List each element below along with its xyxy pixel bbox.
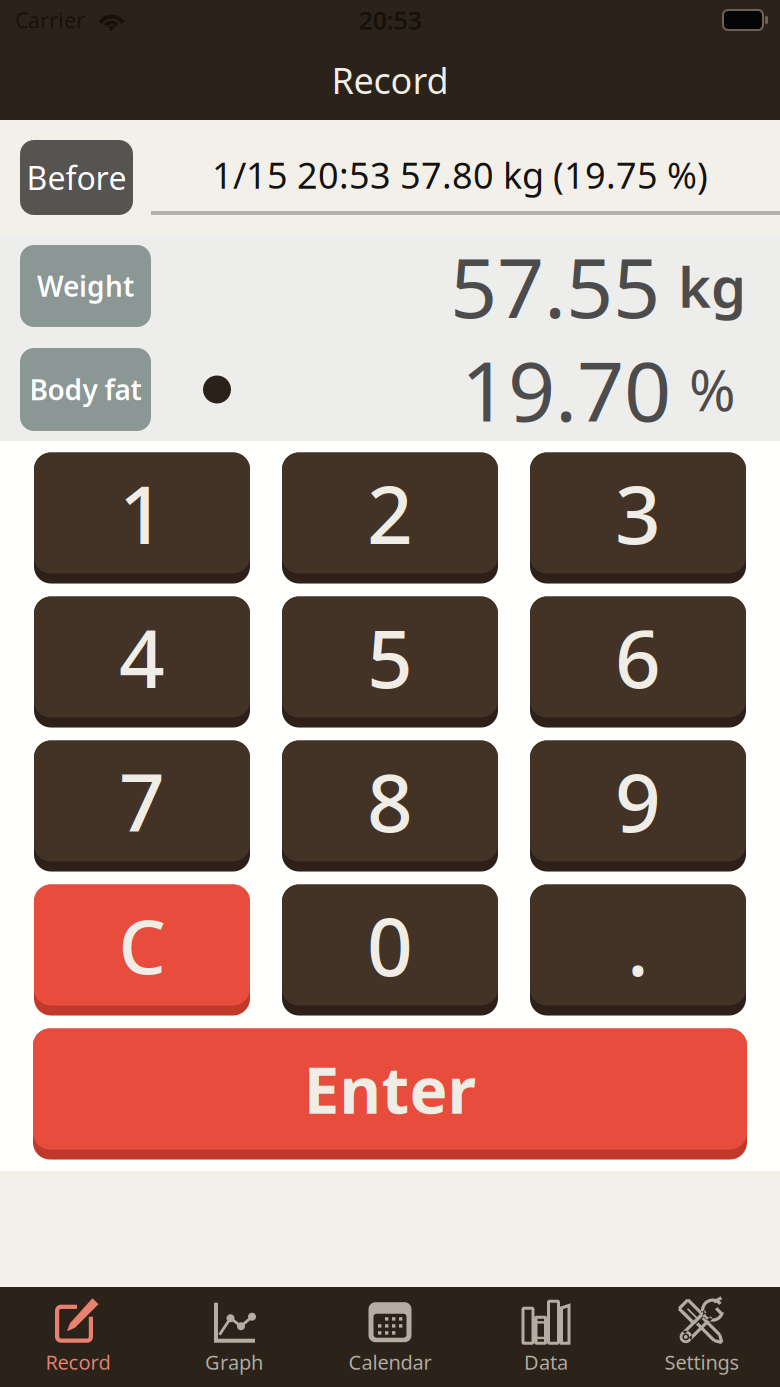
staticText: Settings (664, 1349, 739, 1375)
staticText: Calendar (348, 1349, 431, 1375)
staticText: Carrier (15, 6, 85, 34)
button[interactable]: 4 (34, 596, 250, 727)
button[interactable]: 8 (282, 740, 498, 871)
staticText: 19.70 (461, 335, 671, 444)
button[interactable]: 5 (282, 596, 498, 727)
button[interactable]: Settings (624, 1287, 780, 1387)
button[interactable]: Graph (156, 1287, 312, 1387)
staticText: Record (45, 1349, 110, 1375)
staticText: 20:53 (358, 3, 421, 37)
staticText: 1 (119, 460, 165, 566)
staticText: . (627, 892, 649, 998)
staticText: Graph (205, 1349, 263, 1375)
staticText: 1/15 20:53 57.80 kg (19.75 %) (212, 151, 708, 199)
button[interactable]: Before (20, 140, 133, 215)
button[interactable]: 6 (530, 596, 746, 727)
button[interactable]: Data (468, 1287, 624, 1387)
staticText: kg (678, 249, 746, 323)
button[interactable]: Calendar (312, 1287, 468, 1387)
staticText: Body fat (29, 371, 141, 408)
button[interactable]: Enter (33, 1028, 747, 1159)
button[interactable]: Record (0, 1287, 156, 1387)
staticText: Enter (303, 1046, 476, 1131)
staticText: 3 (615, 460, 661, 566)
button[interactable]: 3 (530, 452, 746, 583)
button[interactable]: 9 (530, 740, 746, 871)
staticText: Before (26, 156, 126, 199)
button[interactable]: 1 (34, 452, 250, 583)
button[interactable]: 2 (282, 452, 498, 583)
staticText: C (118, 895, 165, 995)
button[interactable]: 7 (34, 740, 250, 871)
staticText: Weight (37, 267, 134, 305)
staticText: 2 (367, 460, 413, 566)
staticText: 5 (367, 604, 413, 710)
staticText: 0 (367, 892, 413, 998)
button[interactable]: . (530, 884, 746, 1015)
button[interactable]: 0 (282, 884, 498, 1015)
staticText: 7 (119, 748, 165, 854)
staticText: Record (331, 56, 448, 104)
staticText: 6 (615, 604, 661, 710)
staticText: 4 (119, 604, 165, 710)
staticText: 8 (367, 748, 413, 854)
staticText: % (689, 352, 736, 427)
staticText: 57.55 (450, 231, 660, 341)
button[interactable]: C (34, 884, 250, 1015)
staticText: Data (524, 1349, 568, 1375)
staticText: 9 (615, 748, 661, 854)
